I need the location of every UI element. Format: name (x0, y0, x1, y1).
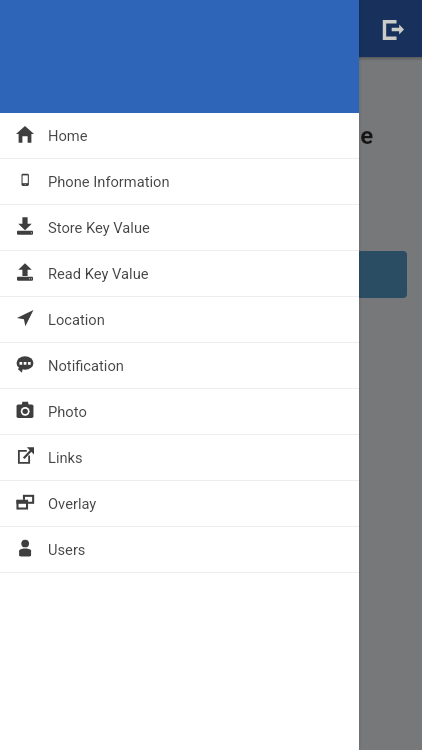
staticText: Notification (48, 357, 124, 374)
button[interactable]: Users (0, 527, 359, 572)
button[interactable]: Overlay (0, 481, 359, 526)
staticText: Overlay (48, 495, 97, 512)
staticText: Read Key Value (48, 265, 149, 282)
staticText: Users (48, 541, 86, 558)
button[interactable]: Store Key Value (0, 205, 359, 250)
button[interactable]: Links (0, 435, 359, 480)
button[interactable]: Home (0, 113, 359, 158)
button[interactable]: Phone Information (0, 159, 359, 204)
staticText: Location (48, 311, 105, 328)
button[interactable]: Notification (0, 343, 359, 388)
staticText: Welcome to the example page (49, 122, 374, 150)
button[interactable]: Sign out (374, 5, 422, 53)
button[interactable]: Get phone information (15, 251, 407, 298)
staticText: Photo (48, 403, 87, 420)
button[interactable]: Photo (0, 389, 359, 434)
staticText: Links (48, 449, 83, 466)
staticText: Home (48, 127, 88, 144)
button[interactable]: Location (0, 297, 359, 342)
staticText: Store Key Value (48, 219, 150, 236)
staticText: Phone Information (48, 173, 170, 190)
button[interactable]: Read Key Value (0, 251, 359, 296)
